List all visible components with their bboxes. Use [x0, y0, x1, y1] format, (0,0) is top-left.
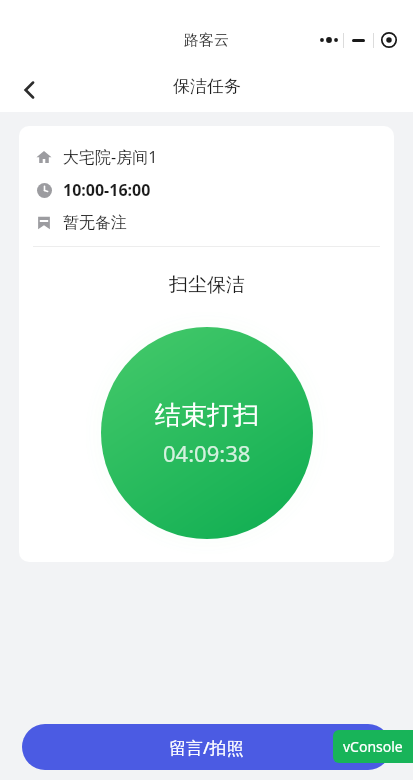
staticText: 扫尘保洁: [169, 273, 245, 297]
staticText: 04:09:38: [163, 438, 251, 468]
button[interactable]: Back: [10, 70, 50, 110]
staticText: 路客云: [184, 31, 229, 50]
staticText: 保洁任务: [173, 76, 241, 97]
button[interactable]: 留言/拍照: [22, 724, 391, 770]
staticText: 结束打扫: [155, 399, 259, 432]
staticText: 留言/拍照: [169, 736, 244, 759]
staticText: 大宅院-房间1: [63, 146, 158, 168]
button[interactable]: Minimize: [344, 24, 373, 56]
button[interactable]: 结束打扫: [101, 327, 313, 539]
staticText: 10:00-16:00: [63, 179, 151, 201]
button[interactable]: More: [315, 24, 343, 56]
staticText: vConsole: [343, 737, 403, 756]
button[interactable]: Close: [374, 24, 403, 56]
staticText: 暂无备注: [63, 213, 127, 233]
button[interactable]: vConsole: [333, 730, 413, 763]
